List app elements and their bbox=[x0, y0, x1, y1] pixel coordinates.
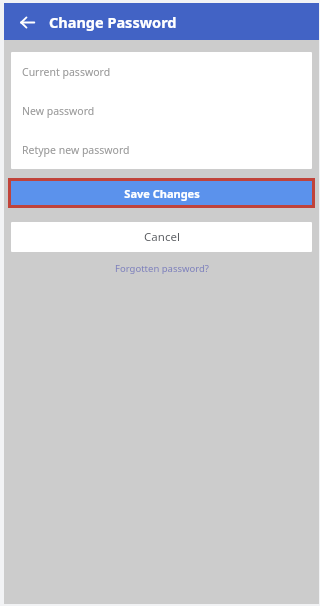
staticText: Forgotten password? bbox=[115, 262, 209, 275]
staticText: Cancel bbox=[144, 229, 180, 245]
button[interactable]: Cancel bbox=[11, 222, 312, 252]
button[interactable]: New password bbox=[11, 91, 312, 130]
button[interactable]: Back bbox=[14, 9, 40, 35]
button[interactable]: Current password bbox=[11, 52, 312, 91]
staticText: Retype new password bbox=[22, 143, 130, 157]
staticText: Save Changes bbox=[124, 186, 200, 201]
staticText: Change Password bbox=[49, 12, 177, 32]
button[interactable]: Forgotten password? bbox=[107, 259, 217, 278]
staticText: Current password bbox=[22, 65, 111, 79]
button[interactable]: Retype new password bbox=[11, 130, 312, 169]
button[interactable]: Save Changes bbox=[11, 181, 312, 205]
staticText: New password bbox=[22, 104, 95, 118]
